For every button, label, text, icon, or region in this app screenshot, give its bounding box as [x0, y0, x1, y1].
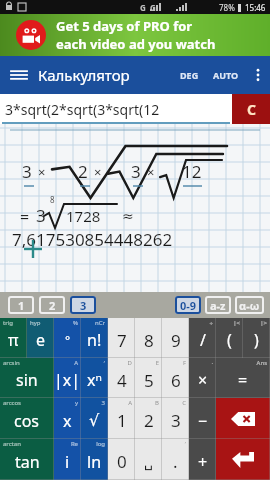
staticText: ×	[94, 163, 102, 181]
staticText: a-z	[210, 298, 226, 313]
button[interactable]: ′	[162, 439, 189, 480]
staticText: 3	[101, 399, 105, 407]
button[interactable]: A	[54, 358, 81, 398]
staticText: 3	[171, 409, 181, 432]
staticText: 2	[144, 409, 154, 432]
staticText: arccos	[3, 399, 21, 407]
button[interactable]: arctan	[0, 439, 54, 480]
staticText: 78%	[219, 2, 235, 13]
staticText: sin	[16, 369, 38, 391]
staticText: ′	[103, 359, 105, 367]
button[interactable]: 2	[39, 296, 65, 314]
staticText: A	[128, 399, 132, 407]
staticText: each video ad you watch	[56, 35, 216, 53]
button[interactable]: +	[189, 439, 216, 480]
staticText: Ans	[256, 359, 267, 367]
staticText: xⁿ	[87, 369, 102, 391]
button[interactable]: trig	[0, 318, 27, 358]
staticText: 1	[18, 298, 25, 313]
button[interactable]: 3*sqrt(2*sqrt(3*sqrt(12	[0, 94, 232, 124]
button[interactable]: %	[54, 318, 81, 358]
staticText: (	[227, 329, 232, 351]
staticText: y	[74, 399, 78, 407]
button[interactable]: ′	[81, 358, 108, 398]
staticText: G G	[140, 2, 156, 13]
staticText: B	[155, 399, 159, 407]
staticText: |x|	[54, 369, 81, 391]
button[interactable]: AUTO	[206, 61, 246, 89]
button[interactable]: 0-9	[175, 296, 201, 314]
button[interactable]: y	[54, 398, 81, 439]
staticText: ·	[211, 359, 213, 367]
button[interactable]: log	[81, 439, 108, 480]
button[interactable]: arccos	[0, 398, 54, 439]
staticText: DEG	[180, 69, 199, 81]
button[interactable]: C	[232, 94, 270, 124]
staticText: e	[36, 329, 46, 351]
button[interactable]: Enter	[216, 439, 270, 480]
button[interactable]: F	[162, 358, 189, 398]
button[interactable]: C	[162, 398, 189, 439]
button[interactable]: More options	[246, 56, 270, 94]
staticText: A	[74, 359, 78, 367]
staticText: +	[198, 451, 208, 473]
button[interactable]: arcsin	[0, 358, 54, 398]
staticText: C	[247, 100, 256, 119]
button[interactable]: E	[135, 358, 162, 398]
button[interactable]: 3	[70, 296, 96, 314]
button[interactable]: |>	[243, 318, 270, 358]
staticText: =	[238, 369, 248, 391]
staticText: i	[65, 451, 70, 473]
button[interactable]: 3	[81, 398, 108, 439]
button[interactable]: B	[135, 398, 162, 439]
staticText: 1	[117, 409, 127, 432]
button[interactable]: 1	[8, 296, 34, 314]
button[interactable]: 9	[162, 318, 189, 358]
button[interactable]: α-ω	[235, 296, 264, 314]
staticText: |>	[260, 319, 267, 327]
staticText: α-ω	[239, 298, 260, 313]
button[interactable]: 7	[108, 318, 135, 358]
button[interactable]: ÷	[189, 318, 216, 358]
staticText: .	[173, 450, 178, 473]
staticText: 4	[117, 369, 127, 392]
staticText: trig	[3, 319, 13, 327]
staticText: F	[182, 359, 186, 367]
staticText: √	[89, 411, 100, 430]
staticText: AUTO	[213, 69, 239, 81]
button[interactable]: 0	[108, 439, 135, 480]
button[interactable]: Re	[54, 439, 81, 480]
staticText: 9	[171, 329, 181, 352]
button[interactable]: 8	[135, 318, 162, 358]
button[interactable]: A	[108, 398, 135, 439]
button[interactable]: D	[108, 358, 135, 398]
staticText: 3	[22, 160, 32, 183]
staticText: Калькулятор	[38, 65, 130, 85]
button[interactable]: DEG	[173, 61, 206, 89]
button[interactable]: −	[189, 398, 216, 439]
staticText: 3	[36, 204, 46, 227]
button[interactable]: Open navigation menu	[0, 56, 38, 94]
button[interactable]: nCr	[81, 318, 108, 358]
button[interactable]: a-z	[205, 296, 231, 314]
staticText: 3	[131, 160, 141, 183]
button[interactable]: Backspace	[216, 398, 270, 439]
button[interactable]: Ans	[216, 358, 270, 398]
staticText: 6	[171, 369, 181, 392]
staticText: 0-9	[180, 298, 197, 313]
staticText: nCr	[95, 319, 105, 327]
staticText: tan	[15, 451, 40, 473]
staticText: C	[182, 399, 186, 407]
button[interactable]: |<	[216, 318, 243, 358]
staticText: 0	[117, 450, 127, 473]
button[interactable]: hyp	[27, 318, 54, 358]
staticText: 5	[144, 369, 154, 392]
button[interactable]: ·	[189, 358, 216, 398]
button[interactable]: Add expression	[22, 238, 44, 260]
staticText: 2	[78, 160, 88, 183]
staticText: −	[198, 410, 208, 432]
button[interactable]: Get 5 days of PRO for	[0, 14, 270, 56]
staticText: 2	[49, 298, 56, 313]
staticText: D	[127, 359, 132, 367]
button[interactable]: ␣	[135, 439, 162, 480]
